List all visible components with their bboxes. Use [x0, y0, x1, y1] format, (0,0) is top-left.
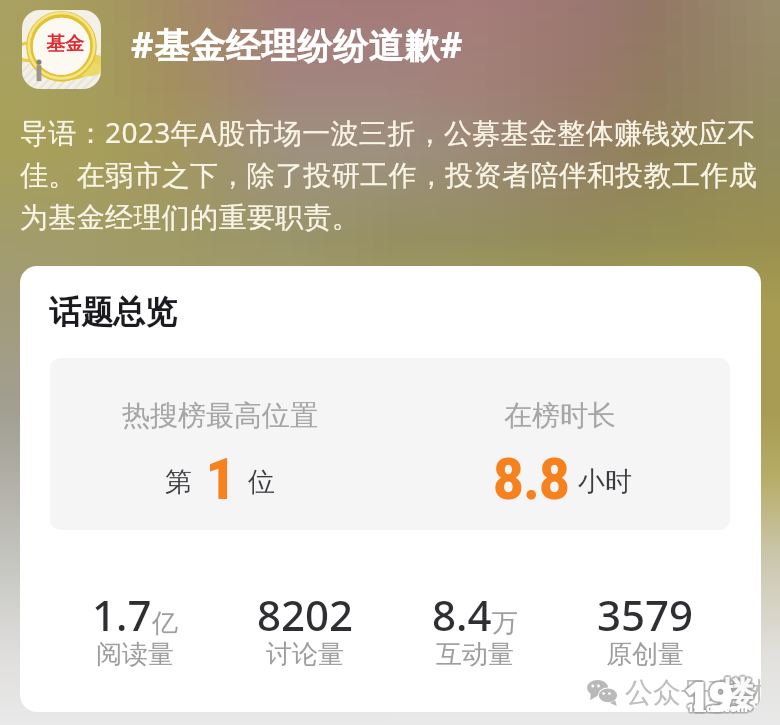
staticText: 19Lou.com [688, 701, 749, 716]
staticText: 19Lou.com [688, 698, 749, 713]
staticText: 1.7 [92, 586, 152, 643]
staticText: 小时 [578, 465, 632, 499]
staticText: 19Lou.com [685, 699, 746, 714]
staticText: 19Lou.com [687, 698, 748, 713]
staticText: 楼 [719, 672, 753, 715]
staticText: 3579 [597, 586, 694, 643]
staticText: 第 [165, 465, 192, 499]
staticText: 阅读量 [96, 638, 174, 671]
staticText: 19Lou.com [686, 701, 747, 716]
staticText: 楼 [718, 672, 752, 715]
staticText: 楼 [719, 673, 753, 716]
staticText: 楼 [720, 674, 754, 717]
staticText: 19 [684, 665, 734, 722]
staticText: 楼 [719, 671, 753, 714]
staticText: 19 [685, 669, 735, 725]
staticText: 互动量 [436, 638, 514, 671]
staticText: 楼 [720, 673, 754, 716]
staticText: 热搜榜最高位置 [122, 398, 318, 433]
staticText: 楼 [720, 671, 754, 714]
staticText: 19Lou.com [686, 699, 747, 714]
staticText: 楼 [720, 672, 754, 715]
staticText: 楼 [721, 672, 755, 715]
staticText: 19 [683, 669, 733, 725]
staticText: 19 [682, 668, 732, 725]
staticText: 导语：2023年A股市场一波三折，公募基金整体赚钱效应不佳。在弱市之下，除了投研… [20, 113, 762, 236]
staticText: 19Lou.com [686, 702, 747, 717]
staticText: 19Lou.com [687, 700, 748, 715]
staticText: 楼 [718, 674, 752, 717]
staticText: 基金 [46, 32, 84, 56]
staticText: 1 [206, 445, 236, 513]
staticText: 8.8 [493, 445, 570, 513]
staticText: 19 [684, 667, 734, 724]
staticText: 19 [686, 668, 736, 725]
staticText: 楼 [722, 674, 756, 717]
staticText: 19Lou.com [687, 702, 748, 717]
staticText: 19 [683, 667, 733, 724]
staticText: #基金经理纷纷道歉# [131, 21, 464, 69]
staticText: 楼 [722, 672, 756, 715]
staticText: 19 [686, 666, 736, 723]
staticText: 19 [685, 667, 735, 724]
staticText: 19 [683, 668, 733, 725]
staticText: 讨论量 [266, 638, 344, 671]
staticText: 19 [683, 666, 733, 723]
staticText: 楼 [721, 673, 755, 716]
staticText: 8.4 [432, 586, 492, 643]
staticText: 原创量 [606, 638, 684, 671]
staticText: 楼 [720, 675, 754, 718]
staticText: 19Lou.com [689, 699, 750, 714]
staticText: 19Lou.com [686, 698, 747, 713]
staticText: 19 [685, 666, 735, 723]
staticText: 8202 [257, 586, 354, 643]
staticText: 19Lou.com [688, 702, 749, 717]
staticText: 19 [685, 665, 735, 722]
staticText: 19 [685, 668, 735, 725]
staticText: 19Lou.com [687, 701, 748, 716]
staticText: 位 [248, 465, 275, 499]
staticText: 楼 [719, 674, 753, 717]
staticText: 话题总览 [49, 292, 177, 332]
staticText: 19 [683, 665, 733, 722]
staticText: 19 [682, 667, 732, 724]
staticText: 楼 [722, 673, 756, 716]
staticText: 楼 [721, 675, 755, 718]
staticText: 19 [684, 666, 734, 723]
staticText: 19Lou.com [689, 701, 750, 716]
staticText: 楼 [718, 673, 752, 716]
staticText: 万 [492, 607, 518, 640]
staticText: 19Lou.com [688, 699, 749, 714]
staticText: 在榜时长 [504, 398, 616, 433]
staticText: 楼 [721, 671, 755, 714]
staticText: 19 [686, 667, 736, 724]
staticText: 公众号理财 [625, 675, 761, 710]
staticText: 19Lou.com [689, 700, 750, 715]
button[interactable]: 基金 app icon [22, 10, 101, 89]
staticText: 19 [684, 668, 734, 725]
staticText: 楼 [721, 674, 755, 717]
staticText: 19 [682, 666, 732, 723]
staticText: 楼 [719, 675, 753, 718]
staticText: 19Lou.com [688, 700, 749, 715]
staticText: 亿 [152, 607, 178, 640]
button[interactable]: WeChat official account [587, 675, 761, 710]
staticText: 19Lou.com [687, 699, 748, 714]
staticText: 19Lou.com [686, 700, 747, 715]
staticText: 19Lou.com [685, 700, 746, 715]
staticText: 19 [684, 669, 734, 725]
staticText: 19Lou.com [685, 701, 746, 716]
